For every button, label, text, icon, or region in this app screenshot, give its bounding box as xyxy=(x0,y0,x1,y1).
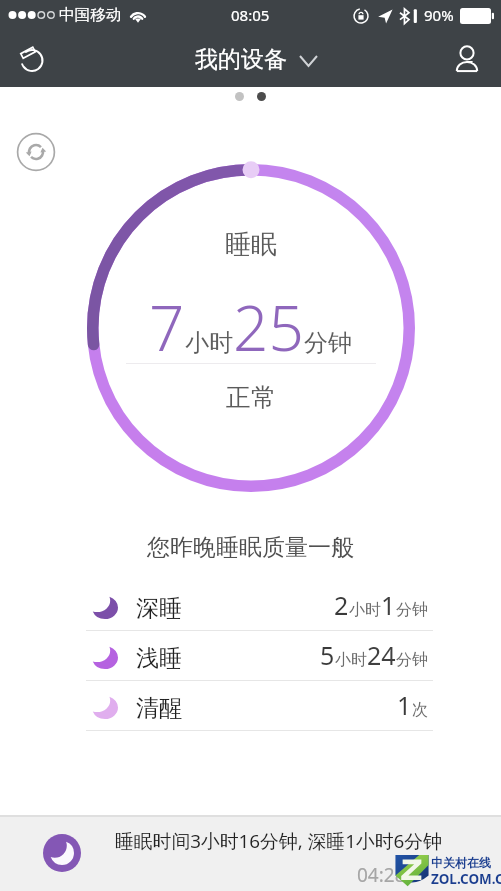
staticText: 1 xyxy=(397,688,412,722)
button[interactable]: 我的设备 xyxy=(195,45,317,74)
staticText: 小时 xyxy=(185,328,233,358)
button[interactable]: 清醒 xyxy=(0,681,501,730)
staticText: 中国移动 xyxy=(59,5,122,25)
staticText: 中关村在线 xyxy=(431,855,491,870)
staticText: 睡眠 xyxy=(225,228,277,261)
staticText: ZOL.COM.CN xyxy=(431,870,501,888)
staticText: 清醒 xyxy=(136,694,182,723)
button[interactable]: 睡眠时间3小时16分钟, 深睡1小时6分钟 xyxy=(0,817,501,891)
staticText: 25 xyxy=(233,285,304,369)
button[interactable]: 深睡 xyxy=(0,581,501,630)
staticText: 2 xyxy=(334,588,349,622)
staticText: 08:05 xyxy=(231,5,270,25)
staticText: 24 xyxy=(367,638,396,672)
staticText: 睡眠时间3小时16分钟, 深睡1小时6分钟 xyxy=(115,828,442,854)
staticText: 次 xyxy=(412,700,428,720)
staticText: 90% xyxy=(424,5,454,25)
staticText: 小时 xyxy=(335,650,367,670)
button[interactable]: Profile xyxy=(449,41,485,77)
staticText: 小时 xyxy=(349,600,381,620)
button[interactable]: My band xyxy=(10,37,54,81)
staticText: 7 xyxy=(149,285,185,369)
staticText: 分钟 xyxy=(396,600,428,620)
staticText: 1 xyxy=(381,588,396,622)
staticText: 我的设备 xyxy=(195,45,287,74)
staticText: 分钟 xyxy=(396,650,428,670)
staticText: 04:28 xyxy=(357,862,406,888)
staticText: 浅睡 xyxy=(136,644,182,673)
button[interactable]: 浅睡 xyxy=(0,631,501,680)
staticText: 正常 xyxy=(226,382,276,413)
staticText: 5 xyxy=(320,638,335,672)
staticText: 分钟 xyxy=(304,328,352,358)
staticText: 您昨晚睡眠质量一般 xyxy=(147,533,354,562)
staticText: 深睡 xyxy=(136,594,182,623)
button[interactable]: Refresh xyxy=(16,132,56,172)
